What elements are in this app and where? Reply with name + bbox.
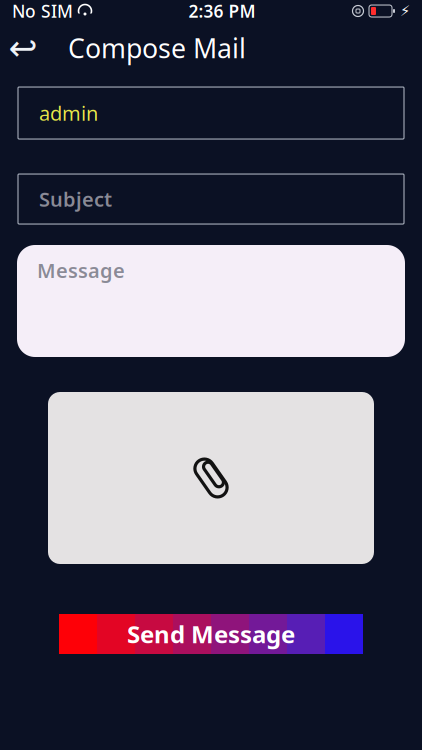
button[interactable]: Send Message — [59, 614, 363, 654]
button[interactable]: Subject — [18, 174, 404, 224]
staticText: ↩ — [8, 28, 37, 68]
button[interactable]: Add attachment — [48, 392, 374, 564]
button[interactable]: Message — [17, 245, 405, 357]
staticText: ⚡︎ — [400, 3, 410, 19]
staticText: Send Message — [127, 618, 295, 650]
staticText: admin — [39, 100, 98, 126]
staticText: Message — [37, 257, 125, 284]
button[interactable]: admin — [18, 87, 404, 139]
staticText: 2:36 PM — [188, 0, 255, 22]
button[interactable]: Back — [0, 26, 46, 70]
staticText: No SIM — [12, 0, 73, 22]
staticText: Subject — [39, 186, 112, 212]
staticText: Compose Mail — [68, 30, 246, 66]
